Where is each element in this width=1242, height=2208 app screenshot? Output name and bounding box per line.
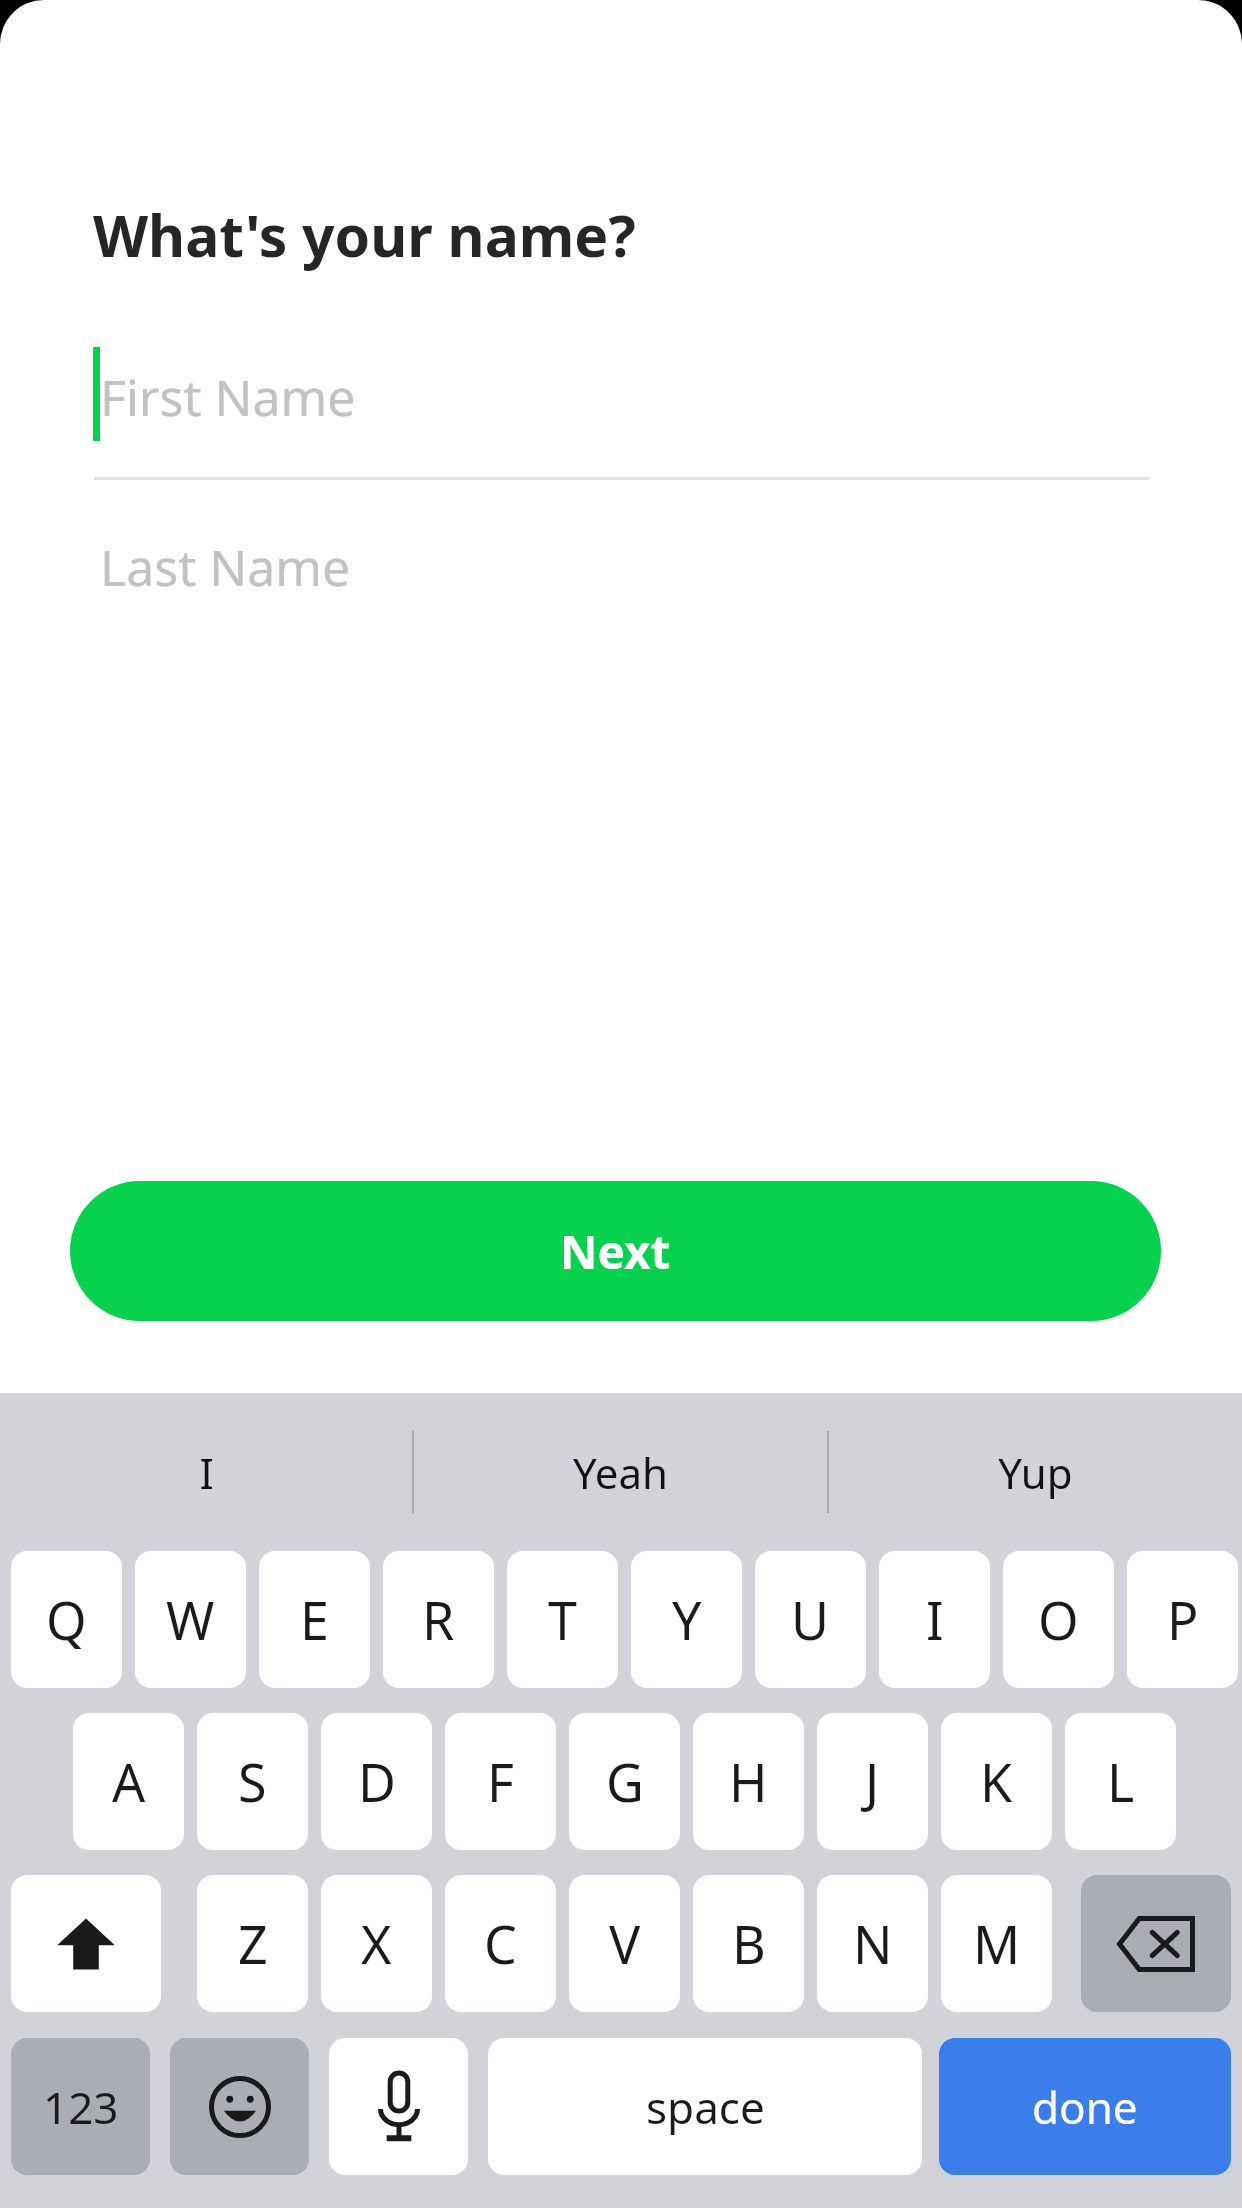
staticText: J	[865, 1746, 880, 1817]
button[interactable]: X	[321, 1875, 432, 2012]
staticText: S	[238, 1746, 267, 1817]
button[interactable]: Yup	[829, 1393, 1242, 1551]
button[interactable]: T	[507, 1551, 618, 1688]
button[interactable]: Last Name	[0, 515, 1242, 615]
button[interactable]: F	[445, 1713, 556, 1850]
staticText: R	[422, 1584, 455, 1655]
button[interactable]: Yeah	[414, 1393, 827, 1551]
staticText: E	[300, 1584, 329, 1655]
button[interactable]: First Name	[0, 345, 1242, 445]
button[interactable]: E	[259, 1551, 370, 1688]
staticText: A	[112, 1746, 146, 1817]
staticText: G	[606, 1746, 644, 1817]
staticText: V	[609, 1908, 641, 1979]
staticText: U	[791, 1584, 830, 1655]
button[interactable]: L	[1065, 1713, 1176, 1850]
staticText: Yeah	[573, 1444, 668, 1501]
staticText: Z	[238, 1908, 268, 1979]
button[interactable]: J	[817, 1713, 928, 1850]
staticText: Y	[672, 1584, 702, 1655]
staticText: space	[646, 2077, 765, 2137]
staticText: O	[1038, 1584, 1079, 1655]
staticText: B	[732, 1908, 766, 1979]
button[interactable]: Voice input	[329, 2038, 468, 2175]
button[interactable]: Emoji	[170, 2038, 309, 2175]
button[interactable]: A	[73, 1713, 184, 1850]
button[interactable]: S	[197, 1713, 308, 1850]
staticText: K	[980, 1746, 1013, 1817]
button[interactable]: P	[1127, 1551, 1238, 1688]
button[interactable]: U	[755, 1551, 866, 1688]
button[interactable]: I	[879, 1551, 990, 1688]
staticText: I	[199, 1444, 214, 1501]
button[interactable]: Z	[197, 1875, 308, 2012]
button[interactable]: Next	[70, 1181, 1161, 1321]
staticText: T	[548, 1584, 577, 1655]
button[interactable]: V	[569, 1875, 680, 2012]
button[interactable]: R	[383, 1551, 494, 1688]
button[interactable]: Backspace	[1081, 1875, 1231, 2012]
button[interactable]: N	[817, 1875, 928, 2012]
staticText: done	[1032, 2077, 1138, 2137]
staticText: W	[166, 1584, 215, 1655]
button[interactable]: G	[569, 1713, 680, 1850]
button[interactable]: C	[445, 1875, 556, 2012]
button[interactable]: D	[321, 1713, 432, 1850]
staticText: P	[1167, 1584, 1199, 1655]
staticText: 123	[43, 2077, 119, 2137]
button[interactable]: K	[941, 1713, 1052, 1850]
button[interactable]: H	[693, 1713, 804, 1850]
button[interactable]: I	[0, 1393, 412, 1551]
button[interactable]: Y	[631, 1551, 742, 1688]
button[interactable]: B	[693, 1875, 804, 2012]
staticText: What's your name?	[93, 196, 636, 274]
staticText: Yup	[998, 1444, 1073, 1501]
staticText: N	[853, 1908, 893, 1979]
staticText: I	[926, 1584, 944, 1655]
staticText: C	[484, 1908, 517, 1979]
button[interactable]: Shift	[11, 1875, 161, 2012]
staticText: Next	[560, 1220, 671, 1283]
button[interactable]: space	[488, 2038, 922, 2175]
staticText: Q	[46, 1584, 87, 1655]
staticText: L	[1107, 1746, 1135, 1817]
staticText: First Name	[100, 363, 356, 431]
button[interactable]: done	[939, 2038, 1231, 2175]
button[interactable]: 123	[11, 2038, 150, 2175]
button[interactable]: W	[135, 1551, 246, 1688]
button[interactable]: O	[1003, 1551, 1114, 1688]
button[interactable]: M	[941, 1875, 1052, 2012]
staticText: H	[729, 1746, 768, 1817]
staticText: X	[361, 1908, 392, 1979]
button[interactable]: Q	[11, 1551, 122, 1688]
staticText: M	[973, 1908, 1021, 1979]
staticText: D	[358, 1746, 396, 1817]
staticText: Last Name	[100, 533, 351, 601]
staticText: F	[487, 1746, 514, 1817]
